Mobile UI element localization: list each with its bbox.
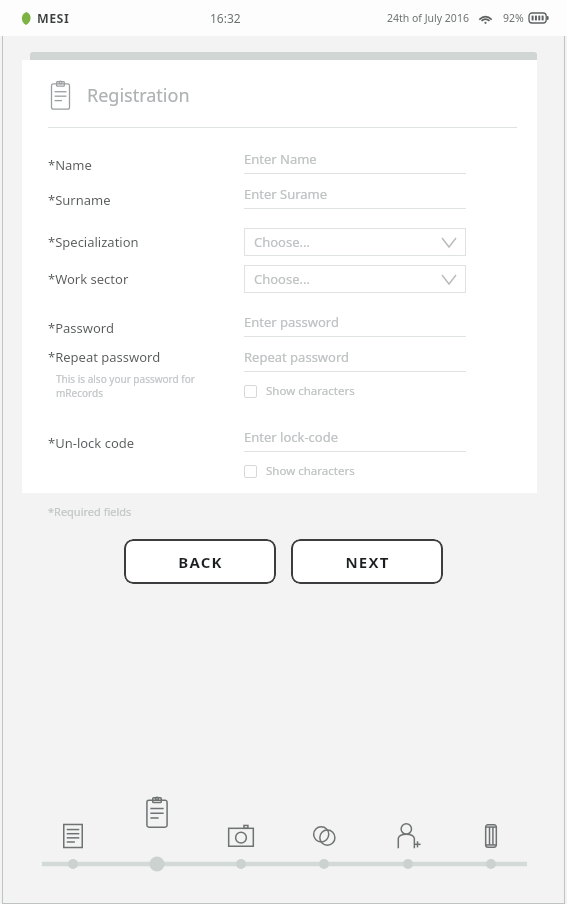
staticText: *Surname xyxy=(48,191,111,209)
button[interactable]: Enter Name xyxy=(244,150,466,174)
button[interactable]: Enter password xyxy=(244,313,466,337)
button[interactable]: Navigation step xyxy=(394,820,422,860)
staticText: *Work sector xyxy=(48,270,129,288)
staticText: This is also your password for mRecords xyxy=(56,372,244,400)
staticText: Choose... xyxy=(254,270,310,288)
staticText: 16:32 xyxy=(210,10,241,26)
staticText: 24th of July 2016 xyxy=(387,11,469,25)
staticText: Enter Surame xyxy=(244,185,328,203)
button[interactable]: Show characters xyxy=(244,461,355,481)
staticText: Show characters xyxy=(266,383,355,399)
button[interactable]: Choose... xyxy=(244,265,466,293)
staticText: NEXT xyxy=(345,552,390,572)
button[interactable]: Enter lock-code xyxy=(244,428,466,452)
staticText: *Required fields xyxy=(48,504,132,519)
button[interactable]: Navigation step xyxy=(59,820,87,860)
button[interactable]: Navigation step xyxy=(227,820,255,860)
staticText: 92% xyxy=(503,11,524,25)
button[interactable]: Navigation step xyxy=(477,820,505,860)
staticText: *Name xyxy=(48,156,92,174)
staticText: *Repeat password xyxy=(48,348,161,366)
staticText: BACK xyxy=(178,552,223,572)
staticText: Registration xyxy=(87,83,190,108)
staticText: *Password xyxy=(48,319,114,337)
button[interactable]: BACK xyxy=(124,539,276,584)
button[interactable]: Navigation step xyxy=(143,796,171,836)
staticText: Enter Name xyxy=(244,150,317,168)
button[interactable]: Enter Surame xyxy=(244,185,466,209)
staticText: MESI xyxy=(37,10,70,27)
staticText: *Specialization xyxy=(48,233,139,251)
staticText: Show characters xyxy=(266,463,355,479)
button[interactable]: Navigation step xyxy=(310,820,338,860)
staticText: Enter password xyxy=(244,313,339,331)
button[interactable]: Choose... xyxy=(244,228,466,256)
button[interactable]: Show characters xyxy=(244,381,355,401)
button[interactable]: NEXT xyxy=(291,539,443,584)
staticText: Repeat password xyxy=(244,348,350,366)
staticText: Choose... xyxy=(254,233,310,251)
staticText: *Un-lock code xyxy=(48,434,135,452)
staticText: Enter lock-code xyxy=(244,428,339,446)
